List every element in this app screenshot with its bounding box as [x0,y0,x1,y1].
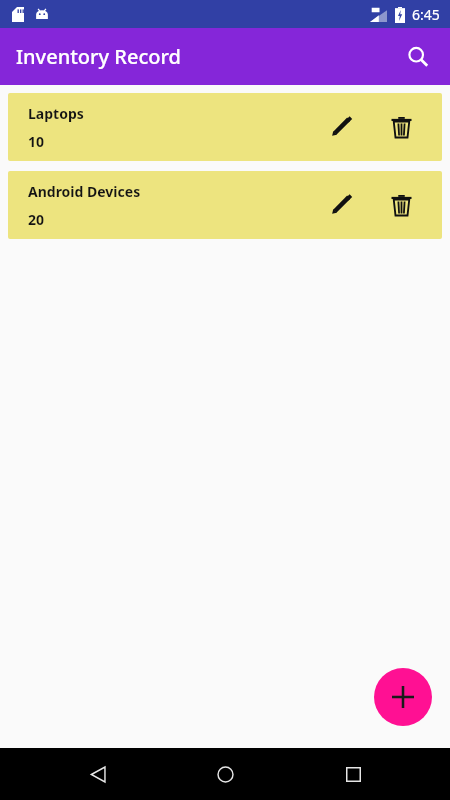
staticText: Laptops [28,104,84,123]
button[interactable]: Laptops [8,93,442,161]
button[interactable]: Add item [374,668,432,726]
button[interactable]: Back [68,748,128,800]
button[interactable]: Edit [320,184,362,226]
button[interactable]: Android Devices [8,171,442,239]
button[interactable]: Search [394,33,442,81]
button[interactable]: Home [195,748,255,800]
button[interactable]: Edit [320,106,362,148]
button[interactable]: Recent apps [323,748,383,800]
button[interactable]: Delete [380,184,422,226]
staticText: 10 [28,132,45,151]
staticText: Android Devices [28,182,141,201]
staticText: Inventory Record [16,43,181,70]
button[interactable]: Delete [380,106,422,148]
staticText: 20 [28,210,45,229]
staticText: 6:45 [412,5,440,24]
